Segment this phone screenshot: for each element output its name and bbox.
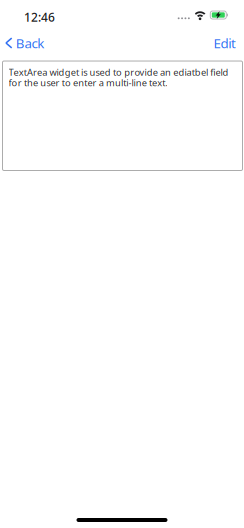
staticText: TextArea widget is used to provide an ed… — [8, 66, 229, 89]
staticText: Edit — [214, 34, 236, 52]
button[interactable]: Edit — [206, 29, 244, 57]
staticText: Back — [16, 34, 44, 52]
staticText: 12:46 — [24, 9, 55, 25]
button[interactable]: Back — [0, 29, 50, 57]
